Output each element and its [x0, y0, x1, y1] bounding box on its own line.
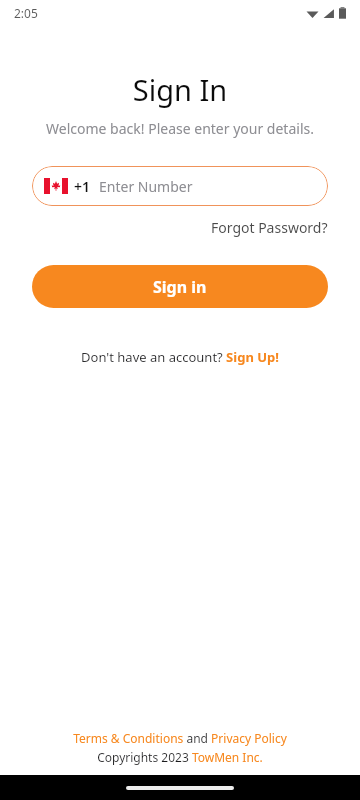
- button[interactable]: +1: [32, 166, 328, 206]
- button[interactable]: Forgot Password?: [211, 216, 328, 239]
- staticText: Welcome back! Please enter your details.: [0, 119, 360, 138]
- button[interactable]: Don't have an account? Sign Up!: [77, 344, 283, 370]
- button[interactable]: Sign in: [32, 265, 328, 308]
- staticText: Enter Number: [99, 177, 193, 196]
- button[interactable]: Terms & Conditions and Privacy Policy: [73, 730, 287, 746]
- staticText: Sign In: [0, 70, 360, 109]
- staticText: Copyrights 2023 TowMen Inc.: [97, 749, 263, 765]
- staticText: +1: [74, 177, 91, 196]
- staticText: Sign in: [153, 276, 207, 298]
- staticText: Forgot Password?: [211, 218, 328, 237]
- staticText: 2:05: [14, 5, 38, 21]
- staticText: Don't have an account? Sign Up!: [81, 348, 279, 366]
